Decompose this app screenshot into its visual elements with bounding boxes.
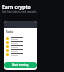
button[interactable]: [6, 40, 35, 44]
staticText: Earn crypto: [2, 4, 31, 11]
button[interactable]: [6, 36, 35, 40]
staticText: Start earning: [12, 63, 29, 67]
button[interactable]: [6, 48, 35, 52]
button[interactable]: [6, 52, 35, 56]
button[interactable]: [6, 44, 35, 48]
staticText: Get free tokens and rewards: [2, 10, 37, 14]
staticText: Tasks: [6, 30, 14, 34]
button[interactable]: Start earning: [4, 62, 37, 68]
